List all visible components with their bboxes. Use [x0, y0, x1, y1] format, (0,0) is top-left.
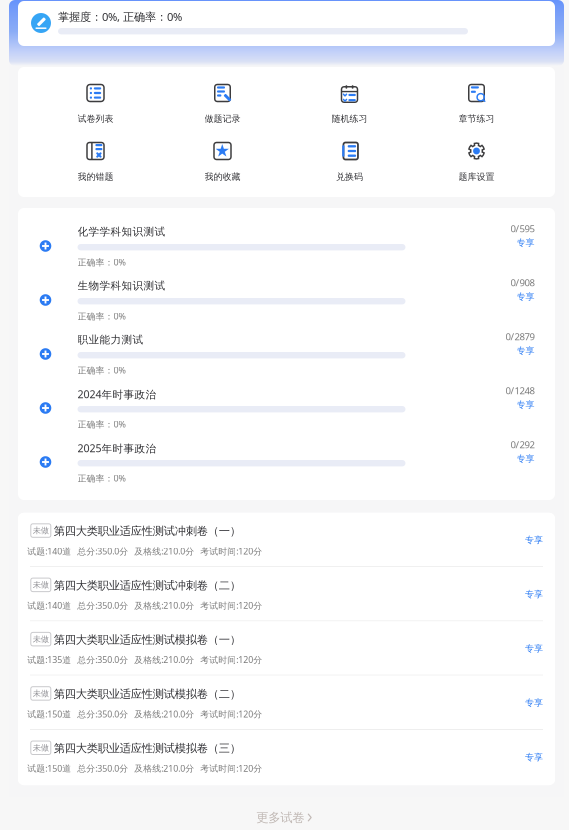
- button[interactable]: 2025年时事政治: [18, 435, 555, 489]
- staticText: 生物学科知识测试: [77, 279, 165, 292]
- staticText: 第四大类职业适应性测试冲刺卷（二）: [54, 578, 241, 592]
- staticText: 专享: [525, 534, 543, 546]
- staticText: 未做: [33, 688, 49, 699]
- staticText: 试题:150道 总分:350.0分 及格线:210.0分 考试时间:120分: [27, 708, 262, 720]
- staticText: 专享: [516, 453, 534, 464]
- staticText: 随机练习: [331, 113, 367, 124]
- button[interactable]: 生物学科知识测试: [18, 273, 555, 327]
- button[interactable]: 未做: [18, 513, 555, 566]
- staticText: 兑换码: [336, 171, 363, 182]
- staticText: 正确率：0%: [77, 310, 125, 322]
- staticText: 试题:140道 总分:350.0分 及格线:210.0分 考试时间:120分: [27, 545, 262, 557]
- staticText: 掌握度：0%, 正确率：0%: [58, 9, 182, 24]
- staticText: 更多试卷: [256, 810, 304, 825]
- staticText: 0/2879: [505, 330, 534, 343]
- button[interactable]: 题库设置: [413, 142, 540, 183]
- button[interactable]: 2024年时事政治: [18, 381, 555, 435]
- button[interactable]: 试卷列表: [32, 84, 159, 125]
- button[interactable]: 我的错题: [32, 142, 159, 183]
- staticText: 试题:150道 总分:350.0分 及格线:210.0分 考试时间:120分: [27, 762, 262, 774]
- staticText: 专享: [516, 399, 534, 410]
- button[interactable]: 未做: [18, 621, 555, 675]
- staticText: 未做: [33, 580, 49, 590]
- staticText: 正确率：0%: [77, 364, 125, 376]
- staticText: 试题:140道 总分:350.0分 及格线:210.0分 考试时间:120分: [27, 599, 262, 611]
- staticText: 试卷列表: [77, 113, 113, 124]
- staticText: 正确率：0%: [77, 472, 125, 484]
- staticText: 专享: [516, 237, 534, 248]
- staticText: 0/908: [510, 276, 534, 289]
- staticText: 未做: [33, 634, 49, 644]
- staticText: 我的收藏: [204, 171, 240, 182]
- staticText: 正确率：0%: [77, 418, 125, 430]
- staticText: 第四大类职业适应性测试模拟卷（一）: [54, 633, 241, 647]
- button[interactable]: 未做: [18, 567, 555, 620]
- staticText: 第四大类职业适应性测试模拟卷（二）: [54, 687, 241, 701]
- staticText: 专享: [525, 751, 543, 763]
- staticText: 我的错题: [77, 171, 113, 182]
- staticText: 第四大类职业适应性测试冲刺卷（一）: [54, 524, 241, 538]
- staticText: 章节练习: [458, 113, 494, 124]
- staticText: 未做: [33, 742, 49, 753]
- button[interactable]: 做题记录: [159, 84, 286, 125]
- staticText: 专享: [525, 697, 543, 708]
- staticText: 专享: [516, 345, 534, 356]
- staticText: 2024年时事政治: [77, 387, 156, 401]
- staticText: 化学学科知识测试: [77, 225, 165, 238]
- staticText: 0/292: [510, 438, 534, 451]
- staticText: 正确率：0%: [77, 256, 125, 268]
- button[interactable]: 未做: [18, 730, 555, 783]
- staticText: 第四大类职业适应性测试模拟卷（三）: [54, 741, 241, 755]
- staticText: 未做: [33, 525, 49, 536]
- staticText: 0/1248: [505, 384, 534, 397]
- staticText: 职业能力测试: [77, 333, 143, 346]
- staticText: 做题记录: [204, 113, 240, 124]
- button[interactable]: 兑换码: [286, 142, 413, 183]
- staticText: 试题:135道 总分:350.0分 及格线:210.0分 考试时间:120分: [27, 654, 262, 666]
- staticText: 题库设置: [458, 171, 494, 182]
- button[interactable]: 随机练习: [286, 84, 413, 125]
- staticText: 专享: [525, 589, 543, 600]
- button[interactable]: 未做: [18, 676, 555, 729]
- button[interactable]: ★: [159, 142, 286, 183]
- button[interactable]: 章节练习: [413, 84, 540, 125]
- staticText: 2025年时事政治: [77, 441, 156, 455]
- staticText: 专享: [525, 643, 543, 654]
- button[interactable]: 职业能力测试: [18, 327, 555, 381]
- staticText: 专享: [516, 291, 534, 302]
- staticText: ★: [214, 141, 230, 160]
- button[interactable]: 化学学科知识测试: [18, 219, 555, 273]
- button[interactable]: 更多试卷: [0, 801, 569, 830]
- staticText: 0/595: [510, 222, 534, 235]
